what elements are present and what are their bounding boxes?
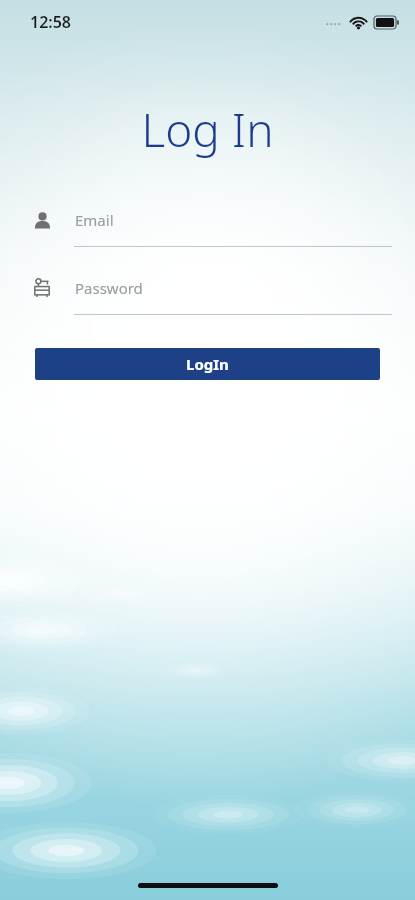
- staticText: Password: [75, 278, 143, 298]
- other: Password: [30, 276, 54, 300]
- staticText: 12:58: [30, 11, 72, 33]
- button[interactable]: Password: [30, 273, 392, 303]
- staticText: Email: [75, 210, 114, 230]
- staticText: LogIn: [186, 354, 229, 374]
- other: Email: [30, 208, 54, 232]
- button[interactable]: LogIn: [35, 348, 380, 380]
- button[interactable]: Email: [30, 205, 392, 235]
- staticText: Log In: [0, 98, 415, 161]
